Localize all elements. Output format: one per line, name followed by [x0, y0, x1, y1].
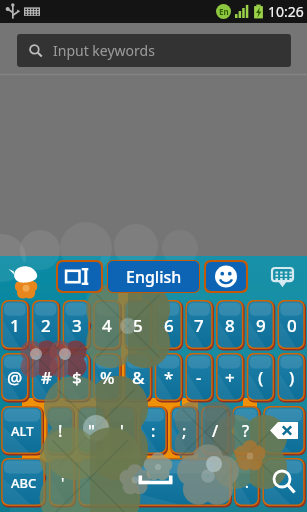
staticText: ) — [289, 366, 295, 389]
staticText: 3 — [72, 314, 82, 337]
button[interactable]: . — [234, 458, 260, 507]
button[interactable]: $ — [63, 353, 91, 402]
staticText: - — [196, 366, 202, 389]
staticText: " — [88, 420, 95, 442]
staticText: . — [245, 473, 249, 492]
button[interactable]: # — [32, 353, 60, 402]
button[interactable]: ; — [170, 406, 198, 455]
button[interactable]: - — [185, 353, 213, 402]
button[interactable]: 3 — [63, 300, 91, 350]
button[interactable]: ABC — [1, 458, 46, 507]
staticText: ! — [58, 420, 63, 442]
button[interactable]: Backspace — [263, 406, 305, 455]
staticText: : — [151, 420, 156, 442]
button[interactable]: * — [155, 353, 183, 402]
button[interactable]: Emoji — [206, 262, 246, 291]
button[interactable]: % — [93, 353, 121, 402]
button[interactable]: ? — [232, 406, 260, 455]
staticText: 2 — [41, 314, 51, 337]
staticText: & — [132, 366, 145, 389]
button[interactable]: Space — [79, 458, 232, 507]
staticText: ; — [182, 420, 187, 442]
button[interactable]: : — [139, 406, 167, 455]
button[interactable]: English — [108, 261, 199, 292]
staticText: 7 — [194, 314, 204, 337]
button[interactable]: ALT — [1, 406, 43, 455]
button[interactable]: / — [201, 406, 229, 455]
button[interactable]: 9 — [247, 300, 275, 350]
button[interactable]: 8 — [216, 300, 244, 350]
staticText: 0 — [287, 314, 297, 337]
button[interactable]: Keyboard layout — [58, 262, 101, 291]
button[interactable]: " — [77, 406, 105, 455]
button[interactable]: ' — [49, 458, 76, 507]
staticText: En — [219, 6, 229, 17]
staticText: 5 — [133, 314, 143, 337]
button[interactable]: 5 — [124, 300, 152, 350]
button[interactable]: 6 — [155, 300, 183, 350]
button[interactable]: Input keywords — [17, 34, 291, 67]
staticText: @ — [7, 366, 23, 389]
button[interactable]: 2 — [32, 300, 60, 350]
staticText: $ — [72, 366, 82, 389]
button[interactable]: ! — [46, 406, 74, 455]
staticText: # — [41, 366, 52, 389]
staticText: ? — [242, 420, 250, 442]
button[interactable]: & — [124, 353, 152, 402]
staticText: + — [225, 366, 235, 389]
button[interactable]: 0 — [278, 300, 306, 350]
button[interactable]: ( — [247, 353, 275, 402]
staticText: % — [100, 366, 115, 389]
button[interactable]: ) — [278, 353, 306, 402]
staticText: ' — [61, 473, 65, 492]
button[interactable]: 1 — [1, 300, 29, 350]
staticText: Input keywords — [53, 41, 155, 60]
button[interactable]: Search — [263, 458, 306, 507]
staticText: 9 — [256, 314, 266, 337]
staticText: 1 — [10, 314, 20, 337]
button[interactable]: + — [216, 353, 244, 402]
button[interactable]: @ — [1, 353, 29, 402]
button[interactable]: 4 — [93, 300, 121, 350]
button[interactable]: ' — [108, 406, 136, 455]
button[interactable]: GO Keyboard menu — [4, 256, 50, 300]
staticText: 6 — [164, 314, 174, 337]
staticText: ALT — [11, 422, 34, 440]
staticText: / — [212, 420, 219, 442]
staticText: ABC — [11, 474, 37, 492]
button[interactable]: 7 — [185, 300, 213, 350]
staticText: ' — [120, 420, 124, 442]
staticText: 10:26 — [268, 2, 304, 21]
button[interactable]: Hide keyboard — [262, 262, 302, 294]
staticText: 8 — [225, 314, 235, 337]
staticText: ( — [258, 366, 264, 389]
staticText: 4 — [102, 314, 112, 337]
staticText: English — [126, 266, 182, 288]
staticText: * — [164, 366, 174, 389]
